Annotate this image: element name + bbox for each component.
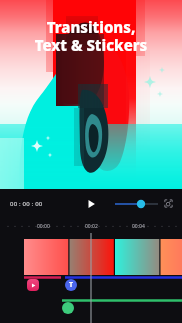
button[interactable]: Video clips: [24, 239, 182, 275]
staticText: 00:04: [132, 223, 145, 230]
staticText: Transitions, Text & Stickers: [0, 17, 182, 55]
button[interactable]: Sticker clip: [62, 302, 74, 314]
staticText: T: [69, 280, 74, 290]
button[interactable]: Audio clip: [27, 279, 39, 291]
staticText: 00:00: [37, 223, 50, 230]
staticText: 00 : 00 : 00: [10, 200, 43, 208]
button[interactable]: Text clip: [65, 279, 77, 291]
button[interactable]: Fullscreen: [162, 197, 175, 210]
button[interactable]: Play: [82, 195, 100, 213]
staticText: 00:02: [85, 223, 98, 230]
button[interactable]: Zoom: [114, 198, 159, 210]
